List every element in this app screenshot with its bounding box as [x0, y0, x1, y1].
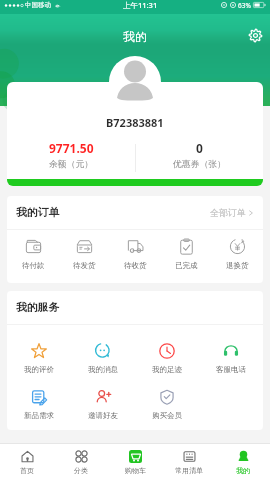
button[interactable]: 我的评价 — [7, 335, 71, 381]
staticText: 常用清单 — [175, 466, 203, 475]
staticText: B72383881 — [106, 115, 164, 130]
button[interactable]: 待收货 — [110, 230, 161, 277]
staticText: 我的服务 — [16, 301, 60, 315]
staticText: 客服电话 — [216, 365, 246, 374]
staticText: 我的订单 — [16, 206, 60, 220]
button[interactable]: 分类 — [54, 444, 108, 480]
staticText: 首页 — [20, 466, 34, 475]
staticText: 分类 — [74, 466, 88, 475]
button[interactable]: 已完成 — [161, 230, 212, 277]
button[interactable]: 新品需求 — [7, 381, 71, 427]
staticText: 9771.50 — [49, 140, 94, 156]
staticText: 优惠券（张） — [173, 159, 226, 170]
staticText: 上午11:31 — [123, 0, 158, 10]
staticText: 63% — [238, 1, 251, 10]
button[interactable]: 我的 — [216, 444, 270, 480]
staticText: 已完成 — [175, 261, 198, 270]
button[interactable]: 首页 — [0, 444, 54, 480]
button[interactable]: 待付款 — [7, 230, 59, 277]
staticText: 中国移动 — [25, 1, 51, 9]
button[interactable]: 购物车 — [108, 444, 162, 480]
button[interactable]: 客服电话 — [199, 335, 263, 381]
button[interactable]: Settings — [247, 27, 264, 44]
staticText: 我的消息 — [88, 365, 118, 374]
staticText: 余额（元） — [49, 159, 93, 170]
button[interactable]: 我的消息 — [71, 335, 135, 381]
staticText: 新品需求 — [24, 411, 54, 420]
staticText: 待付款 — [22, 261, 45, 270]
staticText: 邀请好友 — [88, 411, 118, 420]
staticText: 退换货 — [226, 261, 249, 270]
button[interactable]: 邀请好友 — [71, 381, 135, 427]
staticText: 待发货 — [73, 261, 96, 270]
button[interactable]: 待发货 — [59, 230, 110, 277]
staticText: 购物车 — [125, 466, 146, 475]
button[interactable]: 我的足迹 — [135, 335, 199, 381]
staticText: 我的足迹 — [152, 365, 182, 374]
staticText: 我的评价 — [24, 365, 54, 374]
button[interactable]: 全部订单 — [208, 203, 255, 222]
staticText: 待收货 — [124, 261, 147, 270]
button[interactable]: 9771.50 — [7, 140, 135, 172]
button[interactable]: 退换货 — [212, 230, 263, 277]
staticText: 我的 — [236, 466, 250, 475]
staticText: 全部订单 — [210, 207, 246, 218]
button[interactable]: 购买会员 — [135, 381, 199, 427]
staticText: 我的 — [123, 29, 147, 44]
staticText: 0 — [196, 140, 203, 156]
button[interactable]: 常用清单 — [162, 444, 216, 480]
staticText: 购买会员 — [152, 411, 182, 420]
button[interactable]: 0 — [135, 140, 263, 172]
